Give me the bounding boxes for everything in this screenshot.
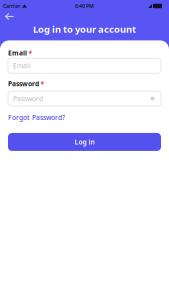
- staticText: Password: [8, 79, 39, 88]
- staticText: Log in to your account: [33, 23, 136, 35]
- button[interactable]: Log in: [8, 133, 161, 151]
- staticText: *: [28, 48, 32, 57]
- staticText: Forgot Password?: [8, 113, 65, 122]
- button[interactable]: Show password: [149, 95, 156, 102]
- staticText: Password: [13, 94, 43, 103]
- button[interactable]: Password: [8, 91, 161, 106]
- staticText: Email: [13, 61, 31, 70]
- staticText: Carrier: [3, 2, 20, 10]
- button[interactable]: Forgot Password?: [8, 113, 65, 122]
- staticText: Log in: [74, 137, 94, 146]
- staticText: 6:40 PM: [75, 2, 94, 10]
- button[interactable]: Back: [0, 12, 15, 22]
- staticText: Email: [8, 48, 27, 57]
- button[interactable]: Email: [8, 58, 161, 73]
- staticText: *: [40, 79, 44, 88]
